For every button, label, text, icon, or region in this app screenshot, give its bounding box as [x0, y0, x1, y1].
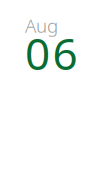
button[interactable]: Aug: [0, 0, 100, 175]
staticText: 06: [25, 24, 77, 82]
staticText: Aug: [25, 13, 58, 38]
